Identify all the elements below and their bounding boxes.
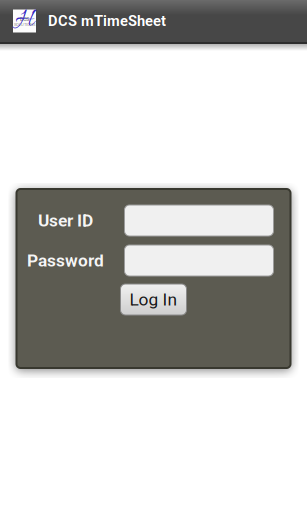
button[interactable]: Password xyxy=(124,245,273,276)
staticText: DCS mTimeSheet xyxy=(48,12,166,30)
staticText: SOLUTIONS xyxy=(14,22,35,27)
button[interactable]: User ID xyxy=(124,205,273,236)
staticText: Log In xyxy=(129,289,177,310)
staticText: Password xyxy=(27,250,104,271)
staticText: User ID xyxy=(38,210,93,231)
staticText: H xyxy=(15,5,34,37)
staticText: DCS xyxy=(20,16,29,22)
button[interactable]: Log In xyxy=(120,284,186,315)
